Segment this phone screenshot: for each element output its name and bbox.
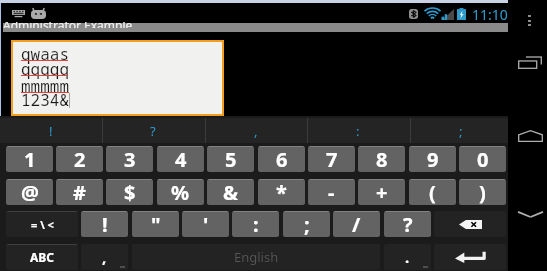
button[interactable]: ): [459, 179, 506, 205]
staticText: ): [479, 179, 486, 205]
button[interactable]: (: [409, 179, 456, 205]
staticText: ?: [150, 122, 156, 140]
button[interactable]: ': [182, 211, 229, 237]
staticText: ABC: [30, 249, 54, 265]
staticText: *: [276, 179, 287, 205]
button[interactable]: :: [232, 211, 279, 237]
staticText: #: [73, 179, 86, 205]
button[interactable]: Administrator Example: [3, 17, 133, 33]
staticText: !: [49, 122, 53, 140]
staticText: :: [356, 122, 360, 140]
button[interactable]: English: [132, 244, 380, 270]
button[interactable]: 4: [157, 146, 204, 172]
staticText: 0: [477, 146, 489, 172]
staticText: 8: [376, 146, 388, 172]
button[interactable]: qwaas: [13, 42, 222, 114]
button[interactable]: 1: [6, 146, 53, 172]
staticText: @: [21, 179, 39, 205]
staticText: 3: [124, 146, 136, 172]
button[interactable]: 3: [106, 146, 153, 172]
staticText: %: [171, 179, 190, 205]
staticText: qqqqq: [21, 58, 70, 80]
button[interactable]: 0: [459, 146, 506, 172]
button[interactable]: @: [6, 179, 53, 205]
button[interactable]: ;: [283, 211, 330, 237]
button[interactable]: .: [384, 244, 431, 270]
button[interactable]: $: [106, 179, 153, 205]
staticText: mmmmm: [21, 75, 70, 97]
button[interactable]: 7: [308, 146, 355, 172]
staticText: 1: [24, 146, 36, 172]
staticText: $: [124, 179, 136, 205]
staticText: English: [234, 248, 279, 266]
staticText: /: [352, 211, 361, 237]
button[interactable]: %: [157, 179, 204, 205]
staticText: ;: [304, 211, 310, 237]
button[interactable]: ,: [205, 118, 307, 143]
button[interactable]: ;: [410, 118, 512, 143]
button[interactable]: ?: [384, 211, 431, 237]
button[interactable]: 6: [258, 146, 305, 172]
button[interactable]: &: [207, 179, 254, 205]
button[interactable]: *: [258, 179, 305, 205]
staticText: = \ <: [31, 217, 54, 232]
staticText: Administrator Example: [3, 17, 133, 33]
button[interactable]: Enter: [434, 244, 506, 270]
staticText: (: [429, 179, 436, 205]
staticText: 2: [74, 146, 86, 172]
button[interactable]: /: [333, 211, 380, 237]
button[interactable]: Home: [508, 118, 547, 150]
staticText: +: [376, 179, 388, 205]
button[interactable]: 9: [409, 146, 456, 172]
staticText: &: [223, 179, 238, 205]
staticText: 7: [326, 146, 338, 172]
button[interactable]: = \ <: [6, 211, 78, 237]
button[interactable]: ABC: [6, 244, 78, 270]
staticText: 11:10: [472, 5, 508, 20]
button[interactable]: ,: [81, 244, 128, 270]
staticText: :: [253, 211, 259, 237]
button[interactable]: :: [307, 118, 409, 143]
button[interactable]: !: [81, 211, 128, 237]
button[interactable]: #: [56, 179, 103, 205]
button[interactable]: 5: [207, 146, 254, 172]
button[interactable]: ?: [102, 118, 204, 143]
staticText: ;: [459, 122, 463, 140]
staticText: !: [102, 211, 108, 237]
staticText: ,: [254, 122, 258, 140]
button[interactable]: ": [132, 211, 179, 237]
staticText: 9: [427, 146, 439, 172]
staticText: ': [203, 211, 209, 237]
button[interactable]: Back: [508, 200, 547, 230]
staticText: 1234&: [21, 89, 70, 111]
button[interactable]: -: [308, 179, 355, 205]
staticText: ,: [102, 247, 107, 267]
button[interactable]: 2: [56, 146, 103, 172]
staticText: 4: [175, 146, 187, 172]
button[interactable]: Recent apps: [508, 46, 547, 80]
button[interactable]: 8: [358, 146, 405, 172]
staticText: .: [405, 247, 410, 267]
staticText: 5: [225, 146, 237, 172]
button[interactable]: Backspace: [434, 211, 506, 237]
button[interactable]: +: [358, 179, 405, 205]
staticText: ": [151, 211, 161, 237]
button[interactable]: More options: [521, 8, 538, 32]
staticText: qwaas: [21, 43, 70, 65]
button[interactable]: !: [0, 118, 102, 143]
staticText: ?: [403, 211, 413, 237]
staticText: -: [328, 179, 335, 205]
staticText: 6: [276, 146, 288, 172]
